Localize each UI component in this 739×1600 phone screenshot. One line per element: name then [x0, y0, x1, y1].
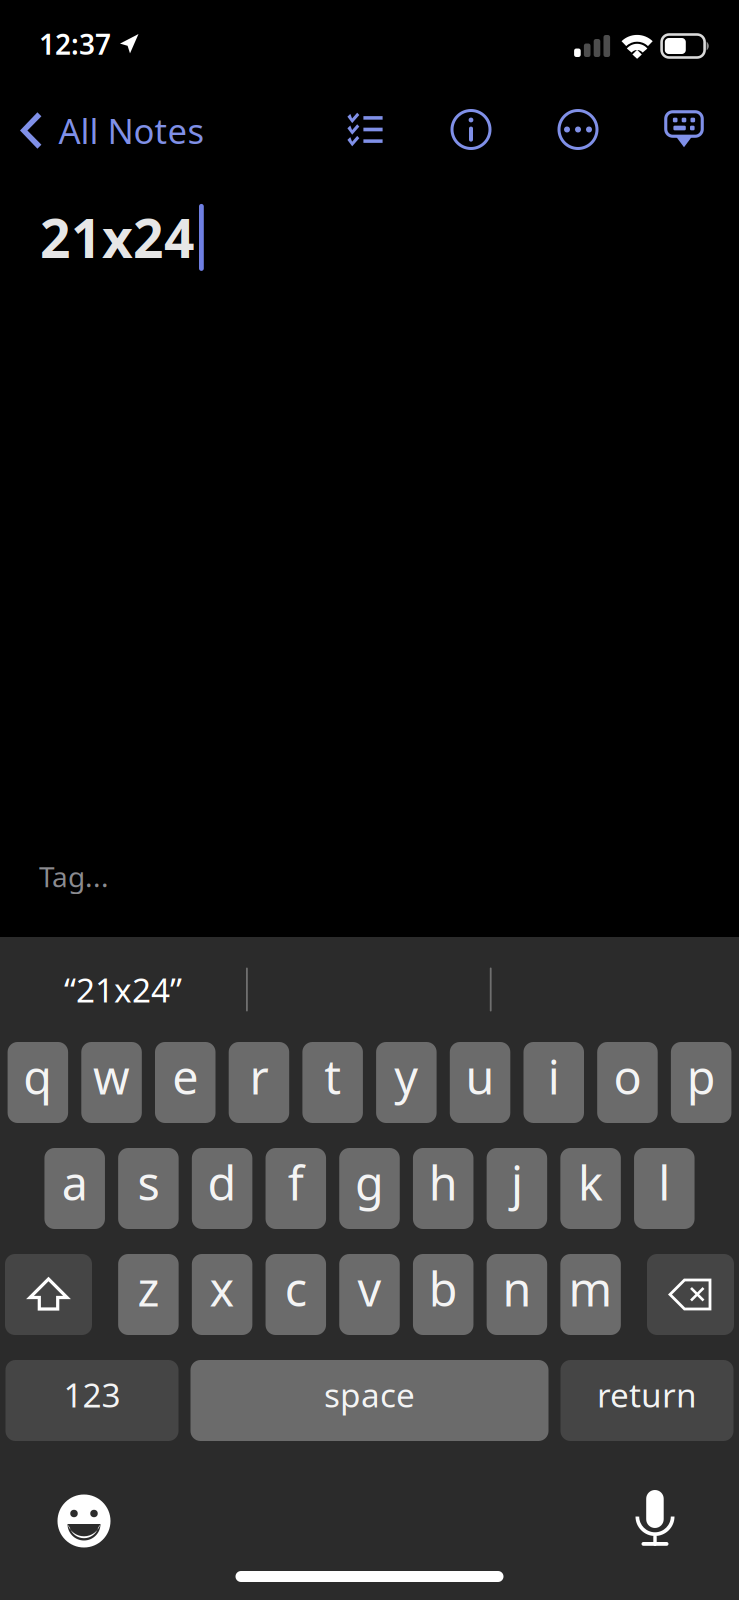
button[interactable]: w — [81, 1042, 142, 1123]
button[interactable]: r — [229, 1042, 289, 1123]
staticText: space — [324, 1372, 415, 1417]
staticText: 21x24 — [40, 202, 195, 273]
button[interactable]: l — [634, 1148, 694, 1229]
button[interactable]: a — [44, 1148, 105, 1229]
button[interactable]: All Notes — [0, 99, 216, 161]
staticText: m — [569, 1257, 613, 1319]
staticText: e — [172, 1045, 198, 1107]
button[interactable]: return — [560, 1360, 733, 1441]
staticText: c — [285, 1257, 307, 1319]
staticText: q — [23, 1045, 52, 1107]
staticText: p — [687, 1045, 716, 1107]
button[interactable]: p — [671, 1042, 731, 1123]
staticText: Tag... — [39, 858, 109, 895]
staticText: u — [466, 1045, 495, 1107]
button[interactable]: b — [413, 1254, 473, 1335]
button[interactable]: 123 — [5, 1360, 178, 1441]
button[interactable]: o — [597, 1042, 658, 1123]
staticText: “21x24” — [64, 967, 182, 1012]
staticText: v — [357, 1257, 381, 1319]
button[interactable]: Delete — [647, 1254, 734, 1335]
button[interactable]: z — [118, 1254, 179, 1335]
staticText: 12:37 — [39, 25, 111, 63]
button[interactable]: e — [155, 1042, 215, 1123]
button[interactable]: m — [560, 1254, 621, 1335]
staticText: r — [249, 1045, 268, 1107]
button[interactable]: s — [118, 1148, 179, 1229]
button[interactable]: g — [339, 1148, 400, 1229]
button[interactable]: v — [339, 1254, 400, 1335]
button[interactable]: y — [376, 1042, 437, 1123]
button[interactable]: d — [192, 1148, 252, 1229]
button[interactable]: n — [487, 1254, 547, 1335]
staticText: h — [429, 1151, 458, 1213]
button[interactable]: Shift — [5, 1254, 92, 1335]
staticText: a — [62, 1151, 88, 1213]
staticText: j — [511, 1151, 523, 1213]
staticText: w — [93, 1045, 130, 1107]
button[interactable]: k — [560, 1148, 621, 1229]
staticText: All Notes — [58, 107, 204, 153]
staticText: d — [208, 1151, 237, 1213]
staticText: y — [394, 1045, 418, 1107]
button[interactable]: Hide Keyboard — [653, 101, 715, 157]
staticText: return — [597, 1372, 697, 1417]
staticText: n — [502, 1257, 531, 1319]
button[interactable]: Emoji — [42, 1479, 126, 1563]
button[interactable]: Checklist — [334, 101, 396, 157]
staticText: z — [137, 1257, 159, 1319]
staticText: t — [324, 1045, 341, 1107]
button[interactable]: h — [413, 1148, 473, 1229]
button[interactable]: space — [190, 1360, 548, 1441]
button[interactable]: j — [487, 1148, 547, 1229]
staticText: f — [288, 1151, 304, 1213]
staticText: b — [429, 1257, 458, 1319]
button[interactable]: i — [523, 1042, 584, 1123]
staticText: l — [658, 1151, 670, 1213]
staticText: i — [548, 1045, 560, 1107]
staticText: s — [137, 1151, 159, 1213]
staticText: g — [355, 1151, 384, 1213]
staticText: o — [613, 1045, 641, 1107]
button[interactable]: Dictation — [613, 1479, 697, 1563]
staticText: x — [210, 1257, 235, 1319]
button[interactable]: u — [450, 1042, 510, 1123]
button[interactable]: More — [547, 101, 609, 157]
button[interactable]: x — [192, 1254, 252, 1335]
button[interactable]: f — [266, 1148, 326, 1229]
staticText: k — [578, 1151, 603, 1213]
button[interactable]: t — [302, 1042, 363, 1123]
button[interactable]: c — [266, 1254, 326, 1335]
button[interactable]: “21x24” — [0, 937, 246, 1042]
button[interactable]: q — [8, 1042, 68, 1123]
button[interactable]: Info — [440, 101, 502, 157]
staticText: 123 — [63, 1372, 120, 1417]
